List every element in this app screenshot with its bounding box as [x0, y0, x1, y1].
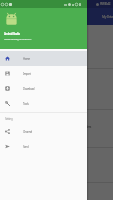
staticText: Setting: [5, 117, 13, 121]
staticText: android.studio@android.com: [4, 37, 32, 40]
button[interactable]: Tools: [0, 96, 87, 111]
staticText: Android Studio: [4, 32, 20, 36]
button[interactable]: Channel: [0, 124, 87, 139]
staticText: Import: [23, 72, 31, 76]
button[interactable]: Send: [0, 139, 87, 154]
staticText: Home: [23, 57, 30, 61]
staticText: Folders: [82, 125, 91, 129]
staticText: Send: [23, 145, 29, 149]
staticText: Channel: [23, 130, 33, 134]
staticText: My Drive: [102, 14, 113, 19]
button[interactable]: Home: [0, 51, 87, 66]
button[interactable]: Download: [0, 81, 87, 96]
staticText: Tools: [23, 102, 29, 106]
staticText: Download: [23, 87, 35, 91]
staticText: PM 00:42: [100, 2, 111, 6]
button[interactable]: Import: [0, 66, 87, 81]
